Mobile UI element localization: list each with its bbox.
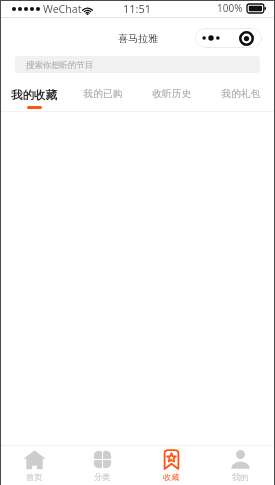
staticText: 11:51	[123, 1, 152, 16]
staticText: 我的已购	[83, 88, 123, 100]
staticText: 我的礼包	[221, 88, 261, 100]
button[interactable]: 首页	[0, 446, 68, 485]
staticText: 喜马拉雅	[118, 32, 158, 45]
staticText: 我的	[232, 472, 249, 482]
staticText: 首页	[26, 472, 43, 482]
staticText: 收听历史	[152, 88, 192, 100]
button[interactable]: 搜索你想听的节目	[15, 56, 260, 73]
button[interactable]: More options and close mini program	[195, 28, 262, 48]
button[interactable]: 我的礼包	[206, 77, 275, 111]
button[interactable]: 收听历史	[137, 77, 206, 111]
button[interactable]: 我的	[206, 446, 275, 485]
staticText: 分类	[94, 472, 111, 482]
button[interactable]: 我的收藏	[0, 77, 68, 111]
button[interactable]: 我的已购	[68, 77, 137, 111]
staticText: WeChat	[43, 2, 82, 16]
staticText: 收藏	[163, 472, 180, 482]
staticText: 搜索你想听的节目	[26, 60, 94, 71]
staticText: 我的收藏	[11, 88, 57, 102]
button[interactable]: 分类	[68, 446, 137, 485]
staticText: 100%	[217, 1, 243, 15]
button[interactable]: 收藏	[137, 446, 206, 485]
